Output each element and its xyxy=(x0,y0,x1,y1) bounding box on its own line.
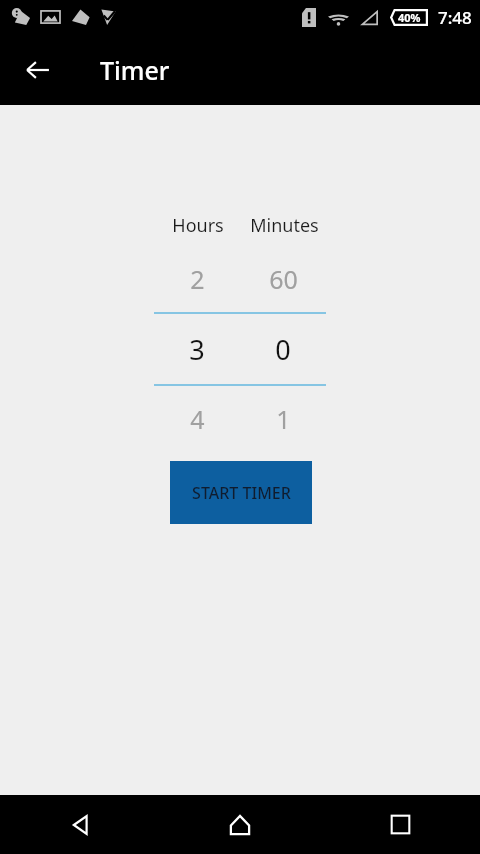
staticText: Timer xyxy=(100,53,170,87)
button[interactable]: 4 xyxy=(154,402,240,436)
staticText: 7:48 xyxy=(438,6,472,29)
button[interactable]: START TIMER xyxy=(170,461,312,524)
button[interactable]: Back xyxy=(14,46,62,94)
staticText: START TIMER xyxy=(192,482,291,504)
button[interactable]: Back xyxy=(0,795,160,854)
button[interactable]: 2 xyxy=(154,262,240,296)
staticText: Minutes xyxy=(250,213,319,238)
staticText: 3 xyxy=(189,331,205,368)
button[interactable]: 60 xyxy=(240,262,326,296)
staticText: 1 xyxy=(276,402,291,436)
staticText: 4 xyxy=(190,402,205,436)
staticText: Hours xyxy=(172,213,224,238)
button[interactable]: 3 xyxy=(154,331,240,368)
button[interactable]: Home xyxy=(160,795,320,854)
button[interactable]: Recent apps xyxy=(320,795,480,854)
button[interactable]: 0 xyxy=(240,331,326,368)
staticText: 40% xyxy=(398,10,421,25)
button[interactable]: 1 xyxy=(240,402,326,436)
staticText: 2 xyxy=(190,262,205,296)
staticText: 60 xyxy=(269,262,298,296)
staticText: 0 xyxy=(275,331,291,368)
